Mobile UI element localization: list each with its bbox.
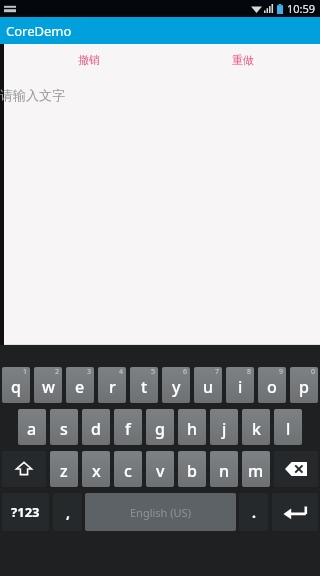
button[interactable]: l: [274, 409, 302, 445]
button[interactable]: ?123: [2, 493, 49, 531]
staticText: 1: [23, 367, 28, 377]
button[interactable]: n: [210, 451, 238, 487]
staticText: 撤销: [78, 53, 100, 67]
button[interactable]: i: [226, 367, 254, 403]
button[interactable]: .: [239, 493, 268, 531]
staticText: ,: [66, 503, 70, 522]
button[interactable]: t: [130, 367, 158, 403]
button[interactable]: 请输入文字: [4, 76, 320, 345]
staticText: i: [238, 376, 243, 398]
button[interactable]: g: [146, 409, 174, 445]
staticText: 8: [247, 367, 252, 377]
button[interactable]: p: [290, 367, 318, 403]
staticText: d: [91, 418, 101, 440]
button[interactable]: h: [178, 409, 206, 445]
button[interactable]: u: [194, 367, 222, 403]
staticText: w: [42, 376, 55, 398]
button[interactable]: a: [18, 409, 46, 445]
staticText: u: [203, 376, 214, 398]
staticText: 3: [87, 367, 92, 377]
staticText: ?123: [11, 503, 40, 521]
staticText: m: [248, 460, 264, 482]
button[interactable]: y: [162, 367, 190, 403]
staticText: a: [27, 418, 37, 440]
button[interactable]: d: [82, 409, 110, 445]
staticText: c: [124, 460, 132, 482]
button[interactable]: Backspace: [274, 451, 318, 487]
staticText: b: [187, 460, 197, 482]
staticText: z: [60, 460, 68, 482]
button[interactable]: o: [258, 367, 286, 403]
staticText: x: [92, 460, 101, 482]
staticText: English (US): [130, 505, 191, 520]
staticText: f: [125, 418, 131, 440]
staticText: y: [172, 376, 181, 398]
staticText: v: [156, 460, 165, 482]
button[interactable]: e: [66, 367, 94, 403]
staticText: n: [219, 460, 230, 482]
staticText: q: [11, 376, 21, 398]
staticText: o: [267, 376, 277, 398]
button[interactable]: m: [242, 451, 270, 487]
staticText: j: [222, 418, 227, 440]
staticText: 重做: [232, 53, 254, 67]
button[interactable]: ,: [53, 493, 82, 531]
button[interactable]: w: [34, 367, 62, 403]
staticText: .: [252, 503, 256, 522]
button[interactable]: k: [242, 409, 270, 445]
staticText: s: [60, 418, 68, 440]
staticText: 5: [151, 367, 156, 377]
button[interactable]: x: [82, 451, 110, 487]
button[interactable]: b: [178, 451, 206, 487]
staticText: 10:59: [287, 1, 316, 16]
button[interactable]: Enter: [272, 493, 318, 531]
button[interactable]: English (US): [85, 493, 236, 531]
button[interactable]: 重做: [228, 49, 258, 71]
button[interactable]: z: [50, 451, 78, 487]
button[interactable]: 撤销: [74, 49, 104, 71]
button[interactable]: Shift: [2, 451, 46, 487]
staticText: t: [141, 376, 148, 398]
button[interactable]: f: [114, 409, 142, 445]
button[interactable]: q: [2, 367, 30, 403]
staticText: 请输入文字: [0, 87, 65, 103]
staticText: k: [252, 418, 261, 440]
staticText: p: [299, 376, 309, 398]
staticText: 7: [215, 367, 220, 377]
staticText: r: [109, 376, 116, 398]
staticText: 4: [119, 367, 124, 377]
staticText: l: [286, 418, 291, 440]
button[interactable]: s: [50, 409, 78, 445]
staticText: g: [155, 418, 165, 440]
staticText: CoreDemo: [6, 22, 72, 40]
staticText: h: [187, 418, 198, 440]
staticText: 9: [279, 367, 284, 377]
button[interactable]: v: [146, 451, 174, 487]
button[interactable]: j: [210, 409, 238, 445]
staticText: 6: [183, 367, 188, 377]
staticText: e: [75, 376, 85, 398]
button[interactable]: c: [114, 451, 142, 487]
staticText: 0: [311, 367, 316, 377]
staticText: 2: [55, 367, 60, 377]
button[interactable]: r: [98, 367, 126, 403]
